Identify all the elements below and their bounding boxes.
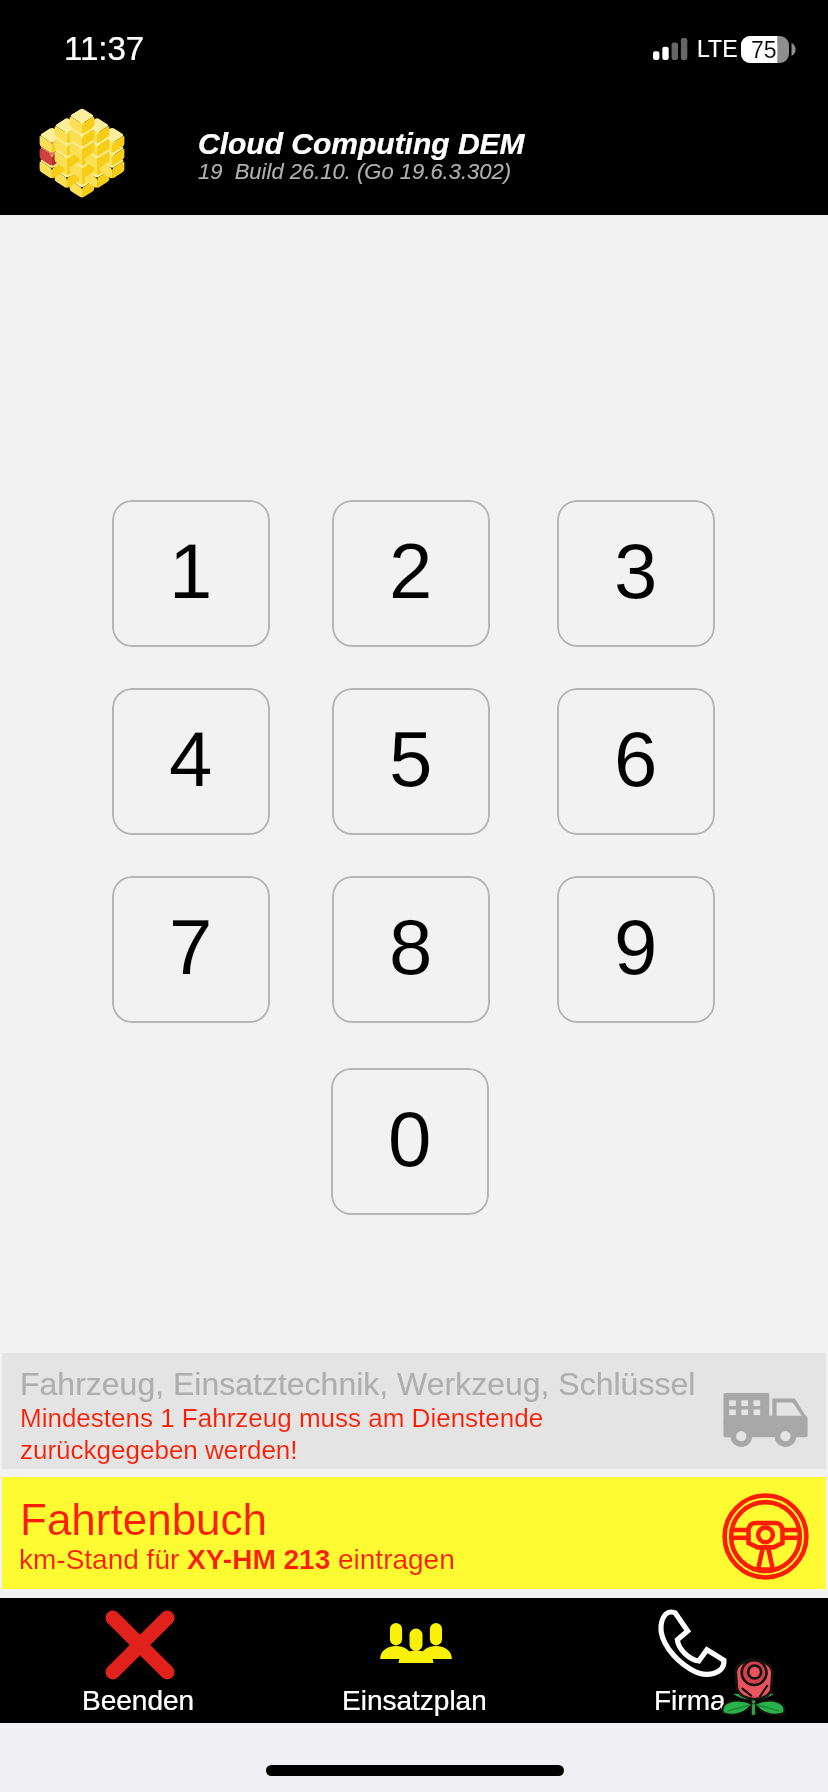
button[interactable]: 1 xyxy=(112,500,270,647)
staticText: Einsatzplan xyxy=(342,1685,487,1716)
button[interactable]: 6 xyxy=(557,688,715,835)
button[interactable] xyxy=(552,1598,828,1723)
button[interactable]: 5 xyxy=(332,688,490,835)
staticText: 9 xyxy=(614,903,658,990)
staticText: Firma xyxy=(654,1685,726,1716)
staticText: Cloud Computing DEM xyxy=(198,127,525,161)
staticText: Mindestens 1 Fahrzeug muss am Dienstende xyxy=(20,1403,544,1432)
staticText: km-Stand für XY-HM 213 eintragen xyxy=(19,1544,455,1575)
staticText: 2 xyxy=(389,527,433,614)
button[interactable]: 0 xyxy=(331,1068,489,1215)
staticText: LTE xyxy=(697,36,738,62)
staticText: 1 xyxy=(169,527,213,614)
staticText: 8 xyxy=(389,903,433,990)
staticText: 75 xyxy=(751,37,777,63)
button[interactable]: 9 xyxy=(557,876,715,1023)
staticText: 11:37 xyxy=(64,30,145,67)
staticText: zurückgegeben werden! xyxy=(20,1435,298,1464)
button[interactable]: 7 xyxy=(112,876,270,1023)
button[interactable]: 4 xyxy=(112,688,270,835)
button[interactable] xyxy=(0,1598,276,1723)
staticText: 0 xyxy=(388,1095,432,1182)
staticText: 7 xyxy=(169,903,213,990)
staticText: Fahrzeug, Einsatztechnik, Werkzeug, Schl… xyxy=(20,1366,696,1402)
staticText: 4 xyxy=(169,715,213,802)
staticText: 19 Build 26.10. (Go 19.6.3.302) xyxy=(198,159,512,184)
button[interactable]: 3 xyxy=(557,500,715,647)
staticText: 6 xyxy=(614,715,658,802)
button[interactable]: 2 xyxy=(332,500,490,647)
other: Rose xyxy=(724,1654,783,1716)
button[interactable]: 8 xyxy=(332,876,490,1023)
staticText: 5 xyxy=(389,715,433,802)
button[interactable]: Fahrtenbuch xyxy=(2,1477,826,1589)
staticText: Fahrtenbuch xyxy=(20,1495,268,1544)
button[interactable]: Fahrzeug, Einsatztechnik, Werkzeug, Schl… xyxy=(2,1353,826,1469)
button[interactable] xyxy=(276,1598,552,1723)
staticText: Beenden xyxy=(82,1685,195,1716)
staticText: 3 xyxy=(614,527,658,614)
